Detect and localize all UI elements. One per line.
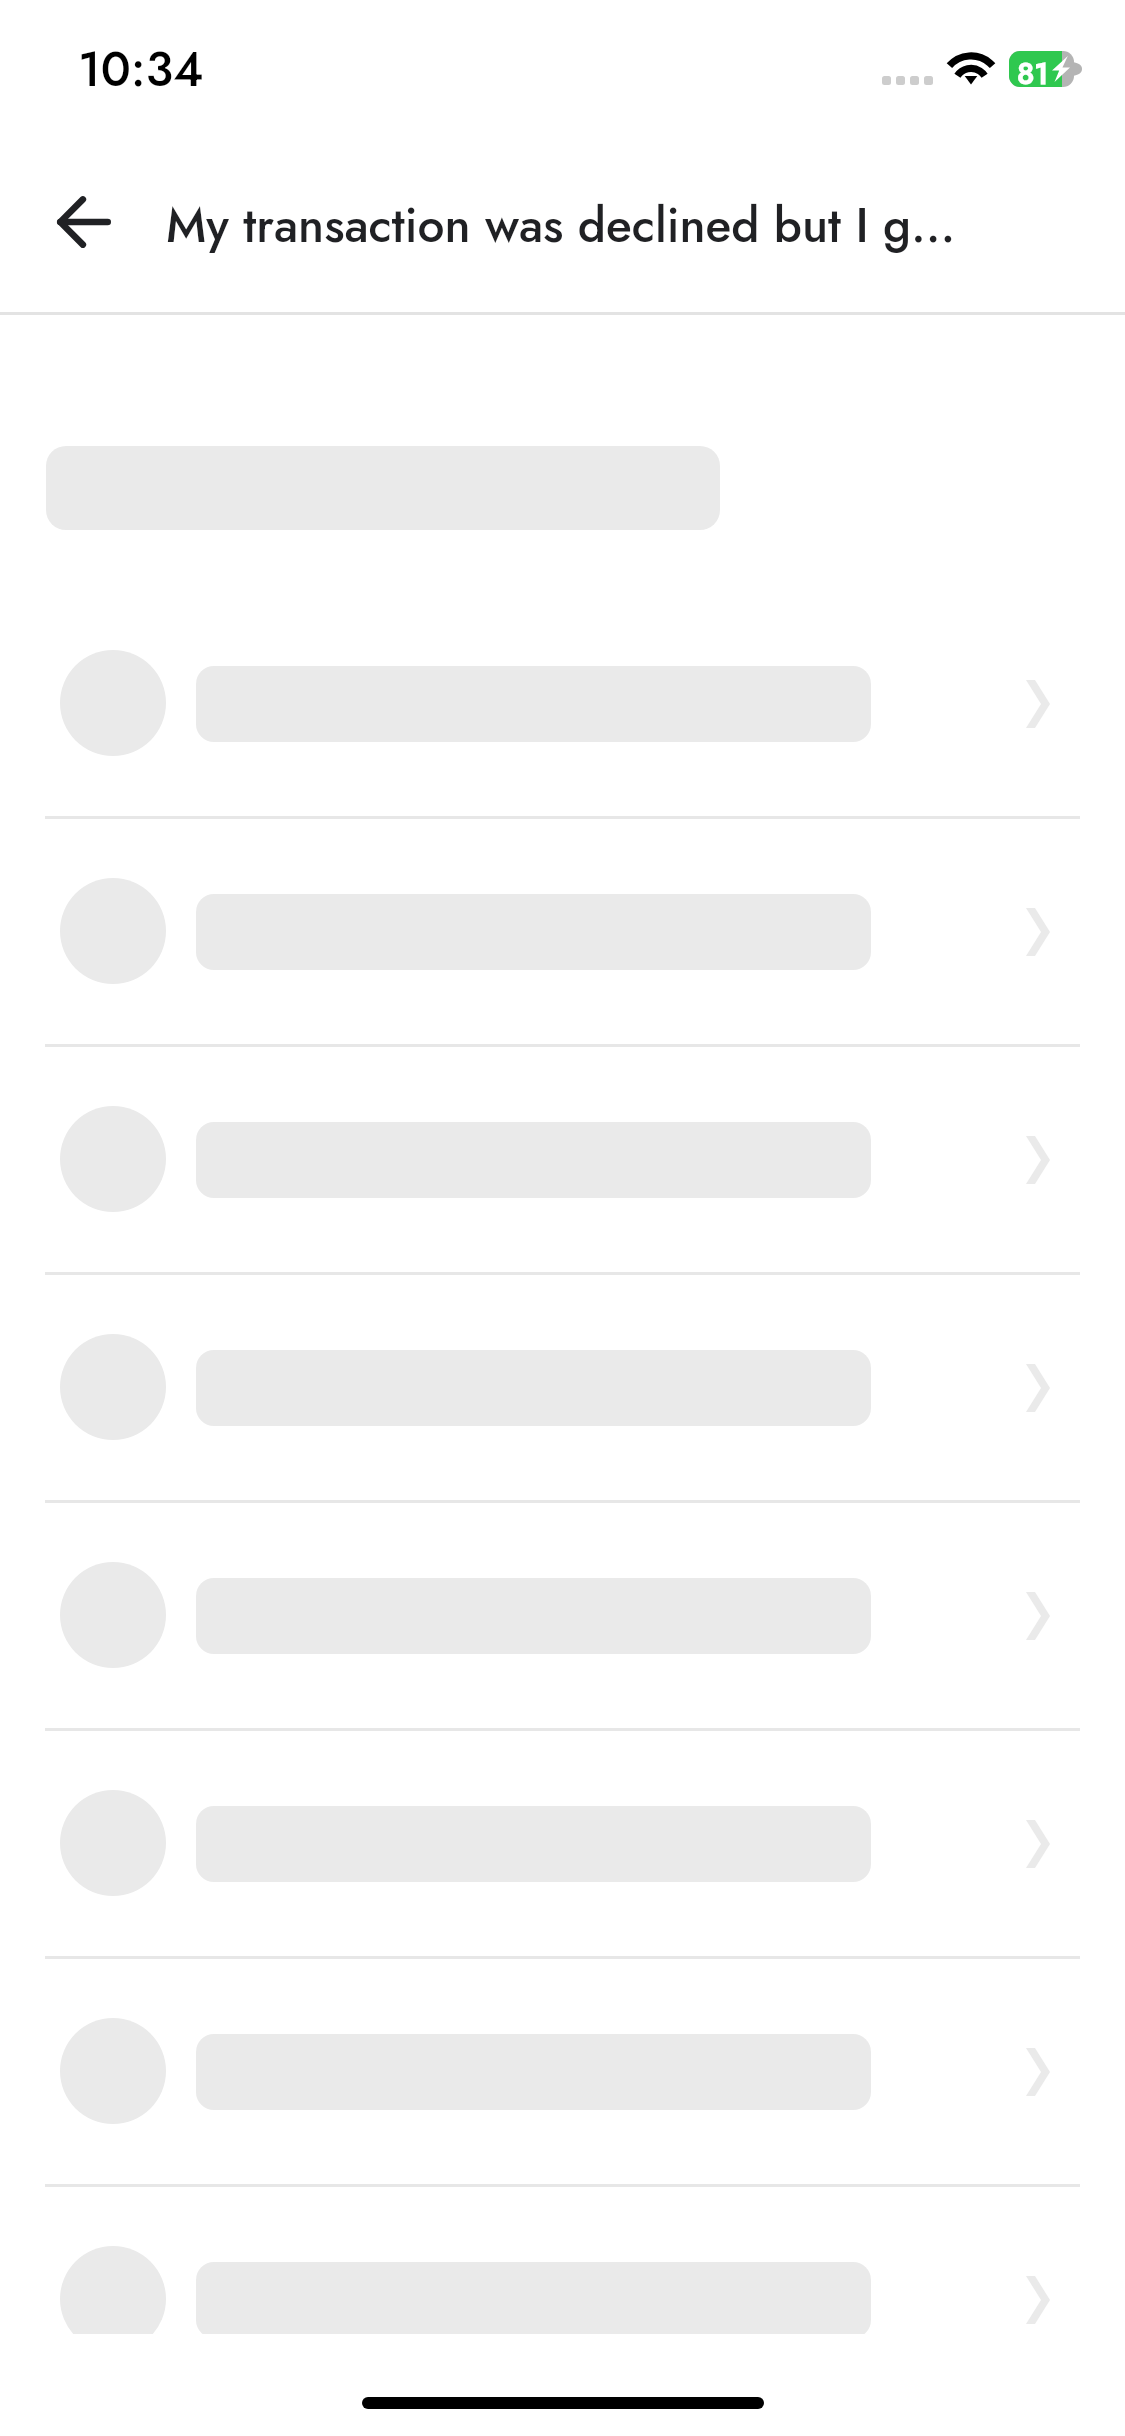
button[interactable] <box>0 591 1125 819</box>
button[interactable] <box>0 1275 1125 1503</box>
button[interactable] <box>0 1503 1125 1731</box>
button[interactable] <box>0 1959 1125 2187</box>
staticText: My transaction was declined but I g... <box>166 191 956 260</box>
button[interactable] <box>0 819 1125 1047</box>
button[interactable] <box>0 2187 1125 2334</box>
button[interactable] <box>0 1047 1125 1275</box>
staticText: 10:34 <box>78 35 204 104</box>
button[interactable]: Back <box>18 168 150 276</box>
staticText: 81 <box>1017 52 1049 87</box>
button[interactable] <box>0 1731 1125 1959</box>
